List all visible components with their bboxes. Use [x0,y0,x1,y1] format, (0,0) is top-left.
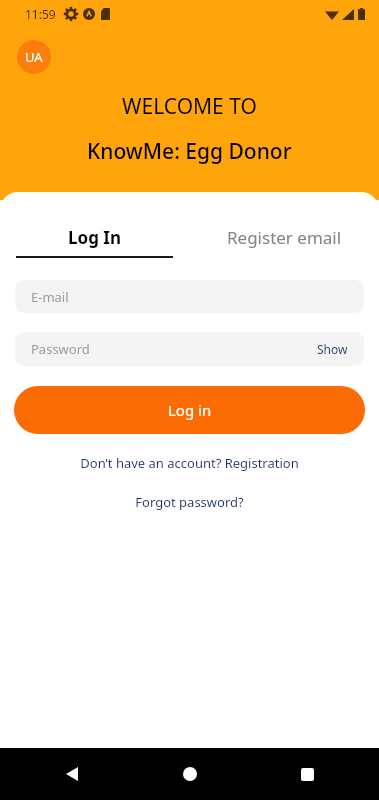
staticText: Register email [227,226,342,249]
staticText: UA [25,48,43,66]
button[interactable]: Recent apps [287,754,327,794]
button[interactable]: Register email [189,226,379,258]
button[interactable]: Show [301,335,364,363]
staticText: Log in [168,400,212,420]
button[interactable]: Log In [0,226,189,258]
staticText: E-mail [31,288,69,306]
button[interactable]: Back [52,754,92,794]
staticText: 11:59 [25,6,56,22]
button[interactable]: Home [170,754,210,794]
button[interactable]: Log in [14,386,365,434]
button[interactable]: UA [17,40,51,74]
button[interactable]: E-mail [15,280,364,313]
staticText: Forgot password? [135,493,244,511]
button[interactable]: Password [15,332,364,366]
button[interactable]: Don’t have an account? Registration [70,450,309,476]
staticText: Password [31,340,90,358]
staticText: Don’t have an account? Registration [80,454,299,472]
staticText: KnowMe: Egg Donor [87,137,292,166]
button[interactable]: Forgot password? [125,489,254,515]
staticText: WELCOME TO [122,92,257,121]
staticText: Log In [68,226,121,249]
staticText: Show [317,341,348,357]
